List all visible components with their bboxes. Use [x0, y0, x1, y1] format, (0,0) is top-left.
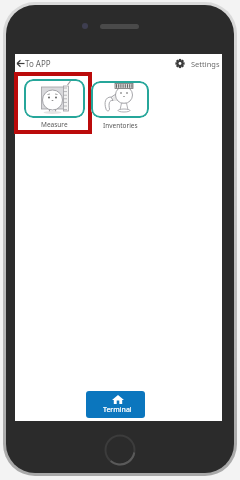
button[interactable]: To APP [15, 57, 71, 70]
staticText: Measure [41, 120, 68, 129]
staticText: Inventories [103, 121, 138, 130]
staticText: Settings [191, 59, 220, 69]
button[interactable] [24, 79, 85, 118]
button[interactable]: Settings [171, 57, 220, 70]
button[interactable]: Terminal [86, 391, 145, 418]
staticText: To APP [25, 58, 51, 69]
staticText: Terminal [103, 405, 132, 415]
button[interactable] [91, 81, 149, 118]
